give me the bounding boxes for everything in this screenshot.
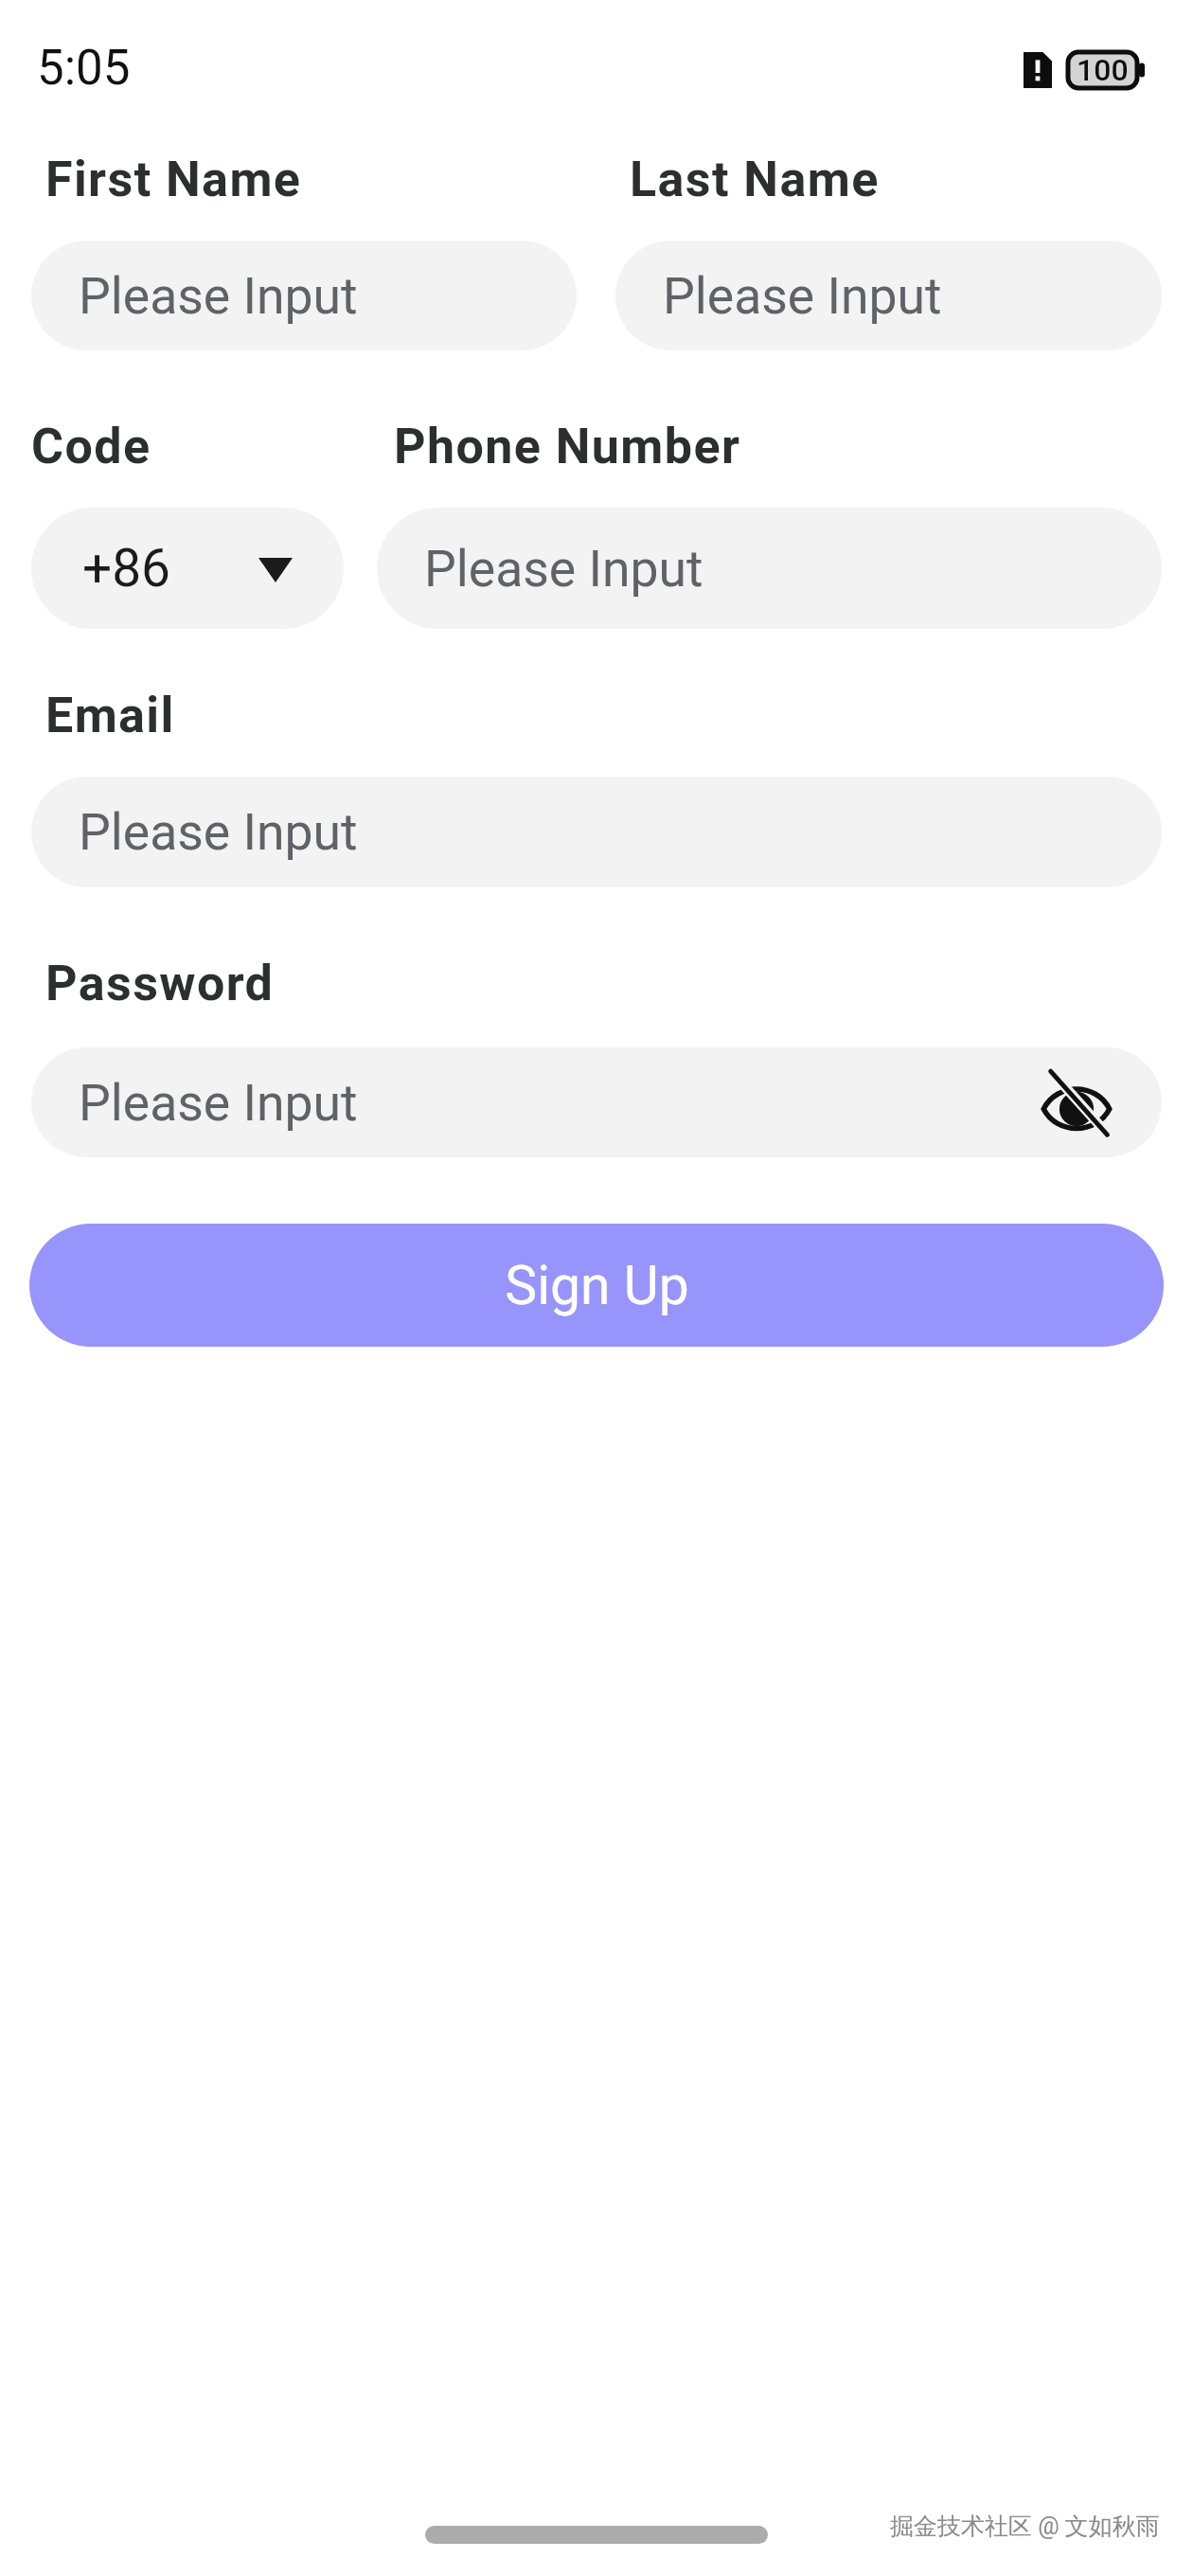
staticText: Please Input xyxy=(79,266,358,326)
staticText: Email xyxy=(45,687,175,744)
button[interactable]: Please Input xyxy=(615,241,1162,350)
staticText: 100 xyxy=(1077,52,1129,88)
button[interactable]: +86 xyxy=(31,508,344,629)
staticText: Please Input xyxy=(79,802,358,862)
button[interactable]: Sign Up xyxy=(29,1224,1164,1347)
staticText: Please Input xyxy=(663,266,942,326)
staticText: First Name xyxy=(45,151,302,208)
staticText: Please Input xyxy=(79,1073,358,1133)
staticText: Code xyxy=(31,418,151,475)
staticText: 掘金技术社区 @ 文如秋雨 xyxy=(890,2512,1160,2541)
staticText: Last Name xyxy=(630,151,880,208)
staticText: Phone Number xyxy=(394,418,741,475)
button[interactable]: Please Input xyxy=(31,241,577,350)
staticText: Please Input xyxy=(424,539,703,599)
button[interactable]: Please Input xyxy=(377,508,1162,629)
button[interactable]: Show password xyxy=(1041,1066,1113,1138)
staticText: Password xyxy=(45,955,275,1012)
staticText: +86 xyxy=(82,538,171,599)
staticText: Sign Up xyxy=(505,1254,689,1317)
button[interactable]: Please Input xyxy=(31,1047,1162,1157)
staticText: 5:05 xyxy=(37,40,131,97)
button[interactable]: Please Input xyxy=(31,777,1162,887)
